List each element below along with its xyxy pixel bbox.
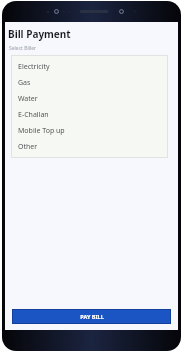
- button[interactable]: Mobile Top up: [11, 123, 168, 139]
- staticText: Water: [18, 94, 38, 104]
- staticText: Other: [18, 142, 38, 152]
- staticText: E-Challan: [18, 110, 49, 120]
- staticText: Bill Payment: [8, 27, 71, 41]
- button[interactable]: Electricity: [11, 59, 168, 75]
- button[interactable]: Water: [11, 91, 168, 107]
- staticText: Electricity: [18, 62, 50, 72]
- staticText: Mobile Top up: [18, 126, 65, 136]
- staticText: Select Biller: [9, 45, 37, 52]
- button[interactable]: PAY BILL: [12, 309, 171, 324]
- button[interactable]: Gas: [11, 75, 168, 91]
- staticText: Gas: [18, 78, 31, 88]
- button[interactable]: E-Challan: [11, 107, 168, 123]
- button[interactable]: Other: [11, 139, 168, 155]
- staticText: PAY BILL: [80, 313, 104, 320]
